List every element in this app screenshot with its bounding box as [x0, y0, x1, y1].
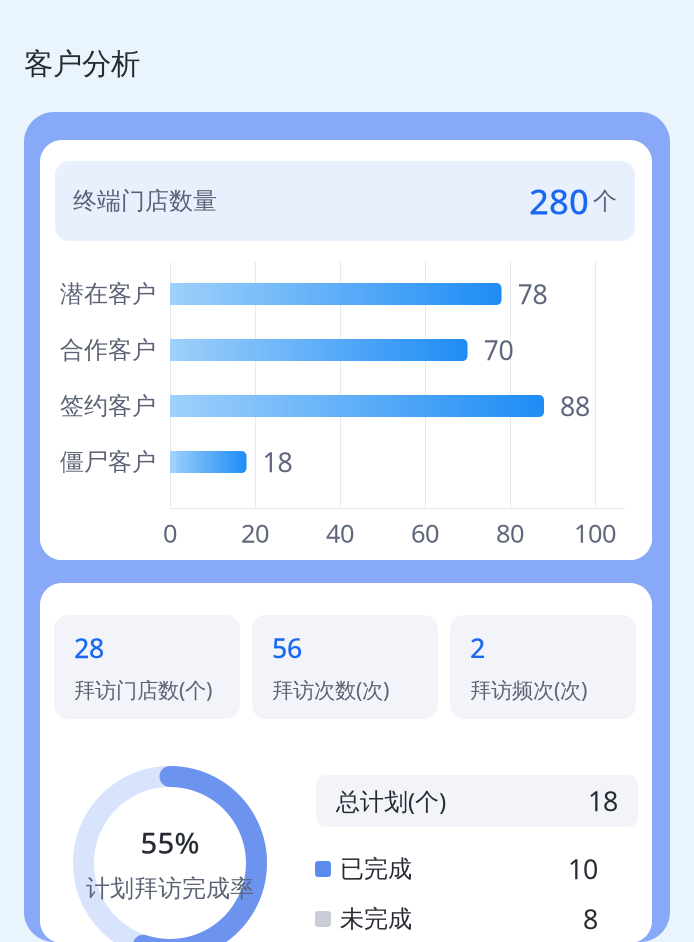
staticText: 10	[568, 851, 598, 887]
staticText: 100	[574, 516, 616, 550]
staticText: 拜访门店数(个)	[74, 675, 212, 704]
staticText: 合作客户	[60, 335, 156, 365]
button[interactable]: 2	[450, 615, 636, 719]
staticText: 终端门店数量	[73, 186, 217, 216]
staticText: 80	[496, 516, 524, 550]
staticText: 20	[241, 516, 269, 550]
staticText: 拜访频次(次)	[470, 675, 587, 704]
staticText: 潜在客户	[60, 279, 156, 309]
staticText: 56	[272, 630, 302, 665]
staticText: 已完成	[340, 854, 412, 884]
staticText: 僵尸客户	[60, 447, 156, 477]
button[interactable]: 终端门店数量	[55, 161, 635, 241]
staticText: 0	[163, 516, 177, 550]
staticText: 55%	[140, 823, 199, 862]
staticText: 40	[326, 516, 354, 550]
button[interactable]: 已完成	[315, 849, 598, 889]
staticText: 拜访次数(次)	[272, 675, 389, 704]
staticText: 18	[262, 444, 292, 480]
staticText: 88	[560, 388, 590, 424]
staticText: 计划拜访完成率	[86, 874, 254, 903]
staticText: 280	[529, 178, 589, 224]
staticText: 28	[74, 630, 104, 665]
staticText: 2	[470, 630, 485, 665]
button[interactable]: 未完成	[315, 899, 598, 939]
staticText: 个	[593, 186, 617, 216]
button[interactable]: 总计划(个)	[316, 775, 638, 827]
staticText: 签约客户	[60, 391, 156, 421]
button[interactable]: 56	[252, 615, 438, 719]
staticText: 8	[583, 901, 598, 937]
staticText: 未完成	[340, 904, 412, 934]
staticText: 客户分析	[24, 46, 140, 82]
staticText: 18	[588, 783, 618, 819]
staticText: 60	[411, 516, 439, 550]
button[interactable]: 28	[54, 615, 240, 719]
staticText: 总计划(个)	[336, 785, 446, 817]
staticText: 78	[517, 276, 547, 312]
staticText: 70	[483, 332, 513, 368]
